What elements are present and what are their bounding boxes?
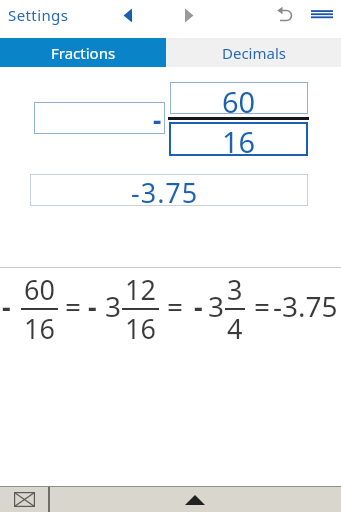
staticText: - — [2, 288, 11, 325]
button[interactable] — [0, 487, 48, 512]
button[interactable] — [178, 3, 202, 27]
button[interactable] — [272, 3, 296, 27]
staticText: -3.75 — [273, 287, 338, 325]
button[interactable]: - — [34, 102, 165, 134]
button[interactable] — [306, 2, 336, 26]
button[interactable]: -3.75 — [30, 174, 308, 206]
button[interactable]: Settings — [2, 0, 75, 31]
staticText: 60 — [24, 271, 55, 308]
button[interactable]: 16 — [169, 122, 308, 156]
staticText: - — [88, 288, 97, 325]
staticText: 4 — [227, 310, 243, 341]
staticText: 3 — [105, 287, 122, 325]
button[interactable]: 60 — [170, 82, 308, 114]
staticText: = — [65, 287, 82, 325]
staticText: 12 — [125, 271, 156, 308]
staticText: = — [167, 287, 184, 325]
staticText: Fractions — [51, 43, 116, 63]
staticText: 16 — [222, 122, 256, 156]
staticText: 16 — [125, 310, 156, 341]
staticText: 16 — [24, 310, 55, 341]
staticText: 60 — [222, 82, 256, 114]
button[interactable] — [170, 487, 220, 512]
button[interactable]: Decimals — [166, 38, 341, 67]
staticText: Decimals — [222, 43, 286, 63]
staticText: - — [194, 288, 203, 325]
staticText: Settings — [8, 5, 69, 25]
staticText: 3 — [208, 287, 225, 325]
staticText: = — [254, 287, 271, 325]
staticText: 3 — [227, 271, 243, 308]
staticText: -3.75 — [131, 174, 199, 206]
button[interactable] — [116, 3, 140, 27]
staticText: - — [153, 102, 162, 134]
button[interactable]: Fractions — [0, 38, 166, 67]
